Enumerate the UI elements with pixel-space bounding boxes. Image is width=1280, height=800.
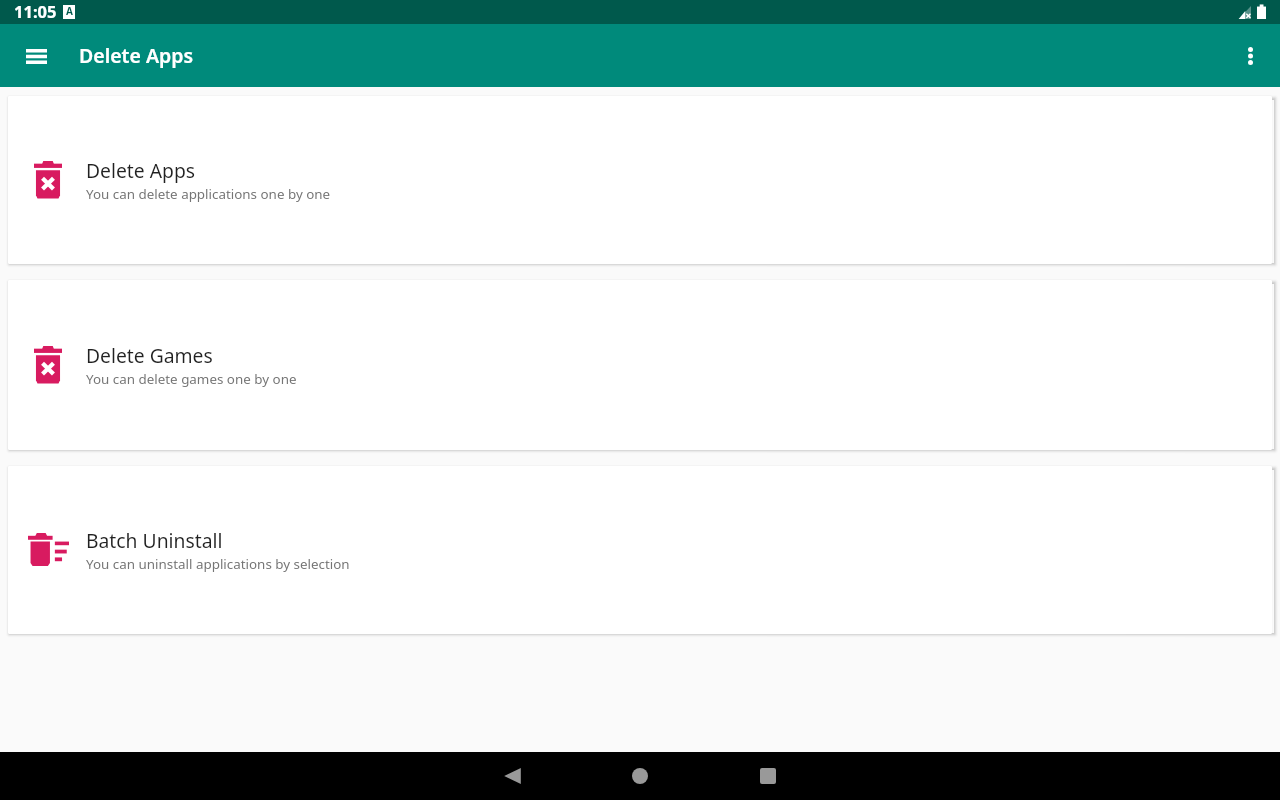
staticText: You can uninstall applications by select… bbox=[86, 555, 350, 573]
button[interactable]: Recent apps bbox=[740, 752, 796, 800]
button[interactable]: Back bbox=[484, 752, 540, 800]
button[interactable]: Home bbox=[612, 752, 668, 800]
button[interactable]: Batch Uninstall bbox=[8, 466, 1272, 634]
staticText: You can delete games one by one bbox=[86, 370, 297, 388]
staticText: Delete Games bbox=[86, 342, 213, 368]
button[interactable]: Delete Apps bbox=[8, 96, 1272, 264]
staticText: You can delete applications one by one bbox=[86, 185, 331, 203]
staticText: A bbox=[66, 4, 73, 18]
button[interactable]: Open navigation drawer bbox=[12, 32, 60, 80]
button[interactable]: Delete Games bbox=[8, 280, 1272, 450]
staticText: Batch Uninstall bbox=[86, 527, 223, 553]
staticText: Delete Apps bbox=[79, 42, 194, 69]
staticText: 11:05 bbox=[14, 0, 57, 22]
staticText: Delete Apps bbox=[86, 157, 196, 183]
button[interactable]: More options bbox=[1226, 32, 1274, 80]
